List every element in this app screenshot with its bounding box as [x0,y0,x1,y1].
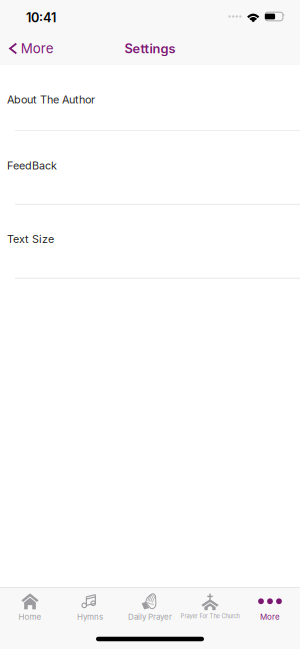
staticText: FeedBack [7,159,57,172]
button[interactable]: Prayer For The Church [180,588,240,629]
button[interactable]: Home [0,588,60,629]
button[interactable]: About The Author [0,65,300,131]
button[interactable]: Text Size [0,205,300,279]
staticText: 10:41 [26,10,56,25]
staticText: About The Author [7,93,95,106]
staticText: More [260,612,280,622]
button[interactable]: More [0,31,62,65]
staticText: Text Size [7,233,54,246]
staticText: Hymns [77,612,103,622]
button[interactable]: Daily Prayer [120,588,180,629]
staticText: More [21,40,54,56]
staticText: Home [18,612,41,622]
button[interactable]: More [240,588,300,629]
staticText: Settings [124,41,175,56]
staticText: Daily Prayer [128,612,172,622]
staticText: Prayer For The Church [180,613,239,619]
button[interactable]: FeedBack [0,131,300,205]
button[interactable]: Hymns [60,588,120,629]
